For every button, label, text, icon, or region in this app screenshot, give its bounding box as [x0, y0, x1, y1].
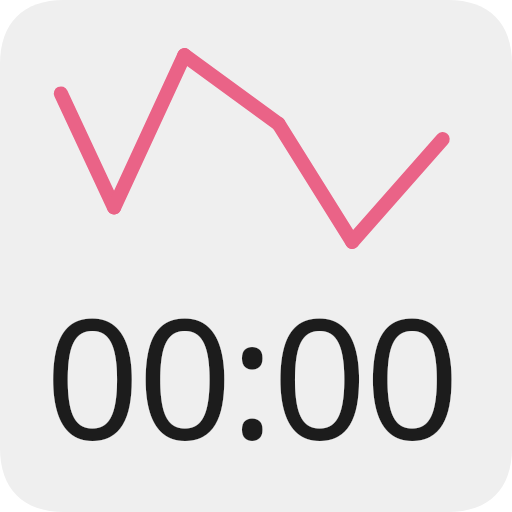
staticText: 00:00	[45, 262, 458, 488]
button[interactable]: Stopwatch app icon	[0, 0, 512, 512]
